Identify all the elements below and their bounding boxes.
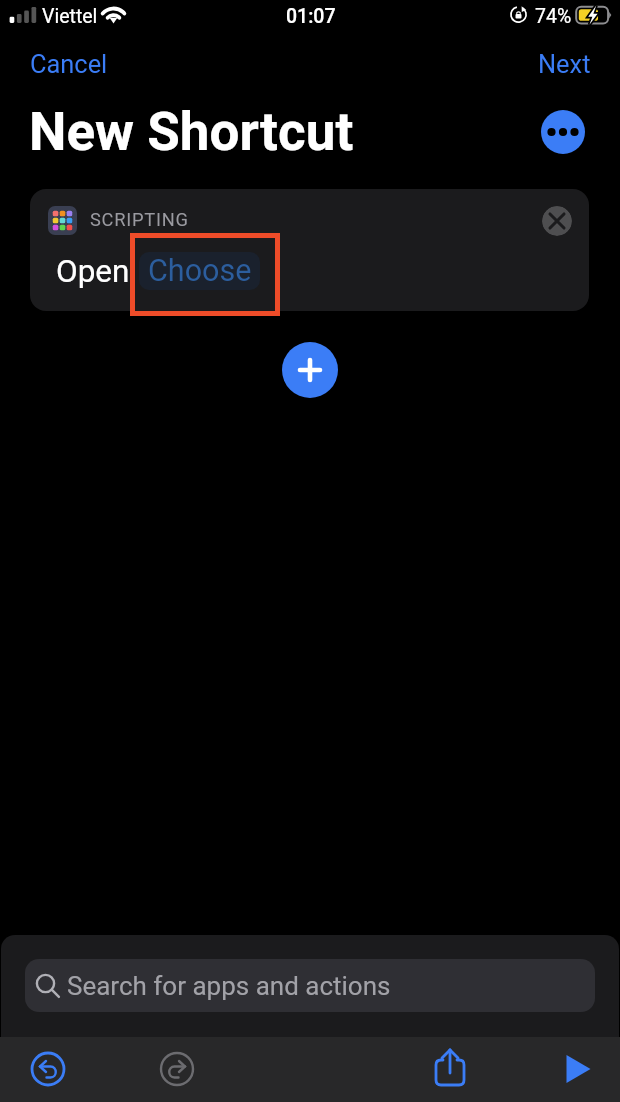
button[interactable]: Search for apps and actions: [25, 959, 595, 1012]
button[interactable]: Add action: [282, 342, 338, 398]
button[interactable]: Share: [426, 1045, 474, 1093]
button[interactable]: Redo: [153, 1045, 201, 1093]
staticText: Next: [538, 49, 591, 77]
staticText: Open: [56, 253, 130, 290]
button[interactable]: Remove action: [542, 206, 572, 236]
button[interactable]: SCRIPTING: [30, 189, 589, 311]
button[interactable]: More options: [541, 110, 585, 154]
staticText: 01:07: [286, 5, 336, 28]
button[interactable]: Cancel: [18, 44, 120, 82]
button[interactable]: Next: [526, 44, 603, 82]
staticText: Viettel: [42, 5, 98, 28]
staticText: SCRIPTING: [90, 209, 189, 230]
button[interactable]: Choose: [139, 252, 260, 290]
staticText: Choose: [148, 253, 252, 289]
button[interactable]: Undo: [24, 1045, 72, 1093]
staticText: Cancel: [30, 49, 108, 77]
staticText: New Shortcut: [29, 101, 354, 163]
button[interactable]: Run: [554, 1045, 602, 1093]
staticText: Search for apps and actions: [67, 971, 391, 1001]
staticText: 74%: [535, 5, 572, 28]
